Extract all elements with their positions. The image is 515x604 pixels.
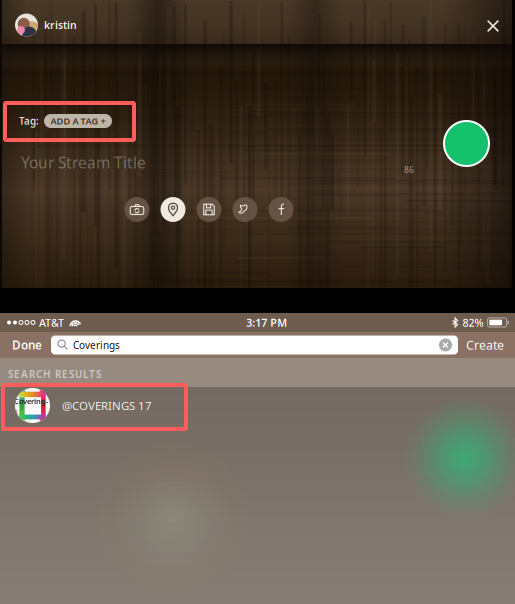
- staticText: Create: [466, 337, 504, 353]
- staticText: 86: [404, 164, 414, 176]
- staticText: ADD A TAG +: [50, 115, 105, 127]
- staticText: 82%: [463, 315, 484, 330]
- staticText: AT&T: [39, 315, 64, 330]
- button[interactable]: ADD A TAG +: [44, 114, 112, 128]
- staticText: @COVERINGS 17: [62, 398, 152, 413]
- button[interactable]: Share to Twitter: [232, 197, 257, 222]
- button[interactable]: kristin: [9, 8, 83, 41]
- staticText: Your Stream Title: [21, 152, 146, 173]
- button[interactable]: Clear text: [439, 335, 458, 354]
- staticText: Tag:: [19, 114, 39, 128]
- button[interactable]: Close: [475, 11, 511, 41]
- staticText: Coverings: [73, 338, 120, 352]
- staticText: Done: [12, 337, 42, 353]
- staticText: kristin: [44, 18, 77, 32]
- button[interactable]: Location: [160, 197, 185, 222]
- staticText: SEARCH RESULTS: [8, 368, 101, 381]
- button[interactable]: Save: [196, 197, 221, 222]
- button[interactable]: Flip camera: [124, 197, 149, 222]
- button[interactable]: Start stream: [443, 120, 490, 167]
- button[interactable]: Share to Facebook: [268, 197, 293, 222]
- button[interactable]: Create: [458, 332, 512, 358]
- button[interactable]: Done: [3, 332, 51, 358]
- button[interactable]: Coverings: [0, 387, 515, 424]
- staticText: 3:17 PM: [246, 315, 287, 330]
- staticText: Coverings: [14, 396, 48, 416]
